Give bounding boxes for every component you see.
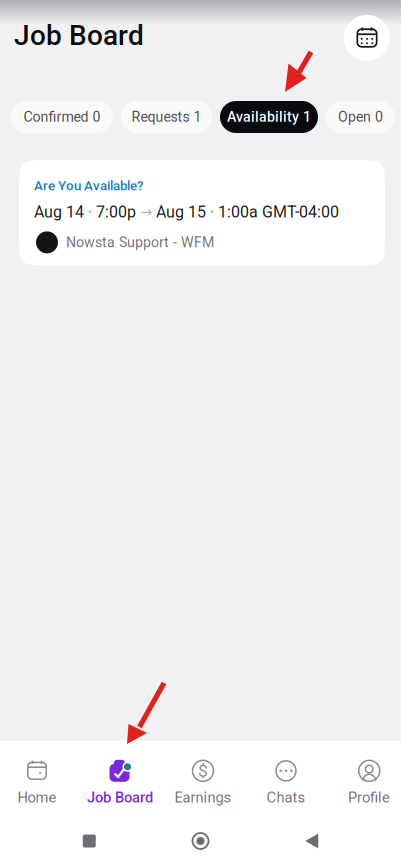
staticText: Job Board [87, 789, 153, 806]
staticText: Aug 14 [34, 203, 84, 221]
staticText: Availability 1 [227, 109, 311, 125]
button[interactable]: Calendar [343, 8, 391, 62]
staticText: Requests 1 [131, 109, 201, 125]
button[interactable]: Profile [327, 741, 401, 817]
staticText: • [210, 205, 214, 219]
button[interactable]: Home [178, 821, 222, 861]
staticText: Job Board [14, 19, 144, 52]
button[interactable]: Back [290, 821, 334, 861]
button[interactable]: Home [0, 741, 78, 817]
staticText: → [140, 203, 152, 221]
button[interactable]: Confirmed 0 [11, 101, 113, 133]
staticText: Nowsta Support - WFM [66, 234, 214, 251]
button[interactable]: Open 0 [326, 101, 395, 133]
staticText: Confirmed 0 [23, 109, 100, 125]
button[interactable]: Recent apps [67, 821, 111, 861]
staticText: 7:00p [96, 203, 136, 221]
staticText: $ [198, 761, 208, 781]
button[interactable]: Requests 1 [121, 101, 212, 133]
staticText: Home [17, 789, 56, 806]
button[interactable]: Chats [244, 741, 327, 817]
staticText: 1:00a GMT-04:00 [218, 203, 339, 221]
staticText: Chats [266, 789, 305, 806]
button[interactable]: $ [161, 741, 244, 817]
staticText: Open 0 [338, 109, 383, 125]
button[interactable]: Job Board [78, 741, 161, 817]
staticText: Earnings [174, 789, 231, 806]
button[interactable]: Availability 1 [220, 101, 318, 133]
staticText: Profile [348, 789, 390, 806]
staticText: Aug 15 [156, 203, 206, 221]
staticText: • [88, 205, 92, 219]
staticText: Are You Available? [34, 178, 143, 194]
